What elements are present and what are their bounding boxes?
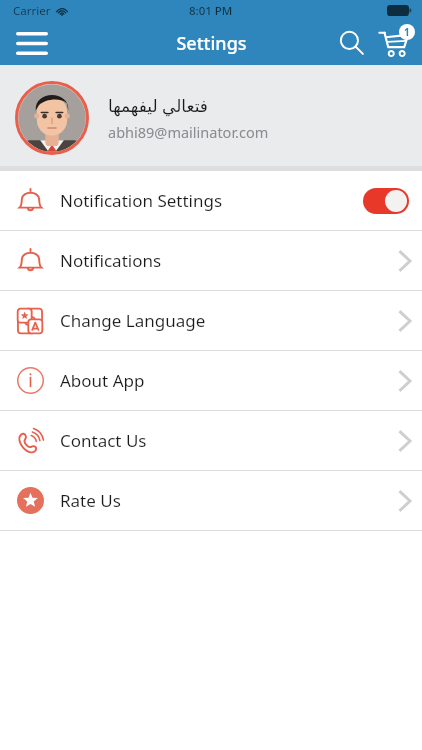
staticText: Carrier <box>13 3 51 19</box>
button[interactable]: Notifications <box>0 231 422 290</box>
button[interactable]: Change Language <box>0 291 422 350</box>
staticText: 8:01 PM <box>189 3 233 19</box>
button[interactable]: Search <box>332 23 372 63</box>
staticText: Notifications <box>60 249 388 272</box>
button[interactable]: Contact Us <box>0 411 422 470</box>
staticText: فتعالي ليفهمها <box>108 94 208 117</box>
button[interactable]: Shopping cart, 1 item <box>372 21 416 65</box>
staticText: Change Language <box>60 309 388 332</box>
button[interactable]: Notification settings enabled <box>363 188 409 214</box>
staticText: Notification Settings <box>60 189 363 212</box>
staticText: About App <box>60 369 388 392</box>
staticText: abhi89@mailinator.com <box>108 122 269 142</box>
staticText: Rate Us <box>60 489 388 512</box>
button[interactable]: Rate Us <box>0 471 422 530</box>
button[interactable]: Notification Settings <box>0 171 422 230</box>
button[interactable]: فتعالي ليفهمها <box>0 65 422 170</box>
staticText: Contact Us <box>60 429 388 452</box>
staticText: Settings <box>176 31 247 56</box>
button[interactable]: About App <box>0 351 422 410</box>
staticText: 1 <box>404 25 410 39</box>
button[interactable]: Open navigation menu <box>10 21 54 65</box>
